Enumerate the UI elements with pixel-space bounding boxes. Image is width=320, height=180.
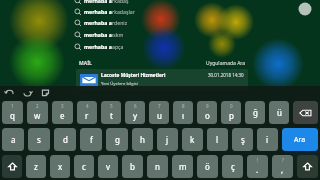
staticText: a [11, 134, 16, 145]
staticText: j [166, 134, 169, 145]
staticText: ş [241, 134, 245, 145]
staticText: 8 [182, 103, 185, 109]
button[interactable]: Uygulamada Ara [206, 60, 246, 67]
button[interactable]: Backspace [293, 101, 318, 124]
staticText: q [10, 110, 15, 121]
button[interactable]: 2 [27, 101, 48, 124]
button[interactable]: ç [222, 155, 243, 178]
button[interactable]: m [172, 155, 193, 178]
staticText: Lacoste Müşteri Hizmetleri [101, 72, 166, 79]
button[interactable]: Shift [297, 155, 318, 178]
staticText: apça [112, 43, 124, 50]
staticText: k [190, 134, 195, 145]
staticText: 4 [86, 103, 89, 109]
button[interactable]: ! [247, 155, 268, 178]
button[interactable]: x [50, 155, 70, 178]
staticText: s [37, 134, 41, 145]
button[interactable]: 6 [125, 101, 145, 124]
button[interactable]: 8 [173, 101, 193, 124]
staticText: merhaba a [84, 8, 112, 15]
staticText: y [133, 110, 138, 121]
button[interactable]: n [147, 155, 168, 178]
staticText: w [34, 110, 41, 121]
button[interactable]: c [74, 155, 94, 178]
staticText: c [82, 161, 86, 172]
staticText: i [266, 134, 269, 145]
staticText: 3 [61, 103, 64, 109]
staticText: v [106, 161, 111, 172]
staticText: . [256, 164, 259, 175]
button[interactable]: 0 [221, 101, 241, 124]
staticText: Ara [294, 135, 306, 145]
button[interactable]: 5 [101, 101, 121, 124]
button[interactable]: Redo [22, 87, 33, 98]
button[interactable]: l [207, 128, 228, 151]
staticText: p [229, 110, 234, 121]
button[interactable]: ğ [245, 101, 265, 124]
button[interactable]: d [54, 128, 76, 151]
staticText: ! [257, 157, 259, 163]
button[interactable]: f [80, 128, 102, 151]
button[interactable]: 7 [149, 101, 169, 124]
button[interactable]: h [132, 128, 153, 151]
button[interactable]: i [257, 128, 278, 151]
staticText: 5 [110, 103, 113, 109]
staticText: rkadaşlar [112, 8, 135, 15]
staticText: Yeni Üyelere bilgisi [101, 81, 138, 87]
button[interactable]: ? [272, 155, 293, 178]
button[interactable]: Stickers [40, 87, 51, 98]
staticText: d [63, 134, 68, 145]
staticText: ü [277, 107, 282, 118]
button[interactable]: Ara [282, 128, 318, 151]
button[interactable]: b [122, 155, 143, 178]
staticText: , [281, 164, 284, 175]
staticText: ı [182, 110, 185, 121]
button[interactable]: j [157, 128, 178, 151]
button[interactable]: ş [232, 128, 253, 151]
button[interactable]: s [28, 128, 50, 151]
button[interactable]: g [106, 128, 128, 151]
button[interactable]: ö [197, 155, 218, 178]
button[interactable]: Lacoste Müşteri Hizmetleri [76, 69, 248, 90]
staticText: ğ [253, 107, 258, 118]
button[interactable]: 1 [2, 101, 23, 124]
staticText: r [85, 110, 89, 121]
button[interactable]: k [182, 128, 203, 151]
staticText: 1 [11, 103, 14, 109]
button[interactable]: merhaba a [74, 17, 320, 28]
staticText: t [110, 110, 113, 121]
button[interactable]: merhaba a [74, 6, 320, 17]
button[interactable]: 9 [197, 101, 217, 124]
staticText: rdeniz [112, 19, 128, 26]
staticText: h [140, 134, 145, 145]
button[interactable]: 4 [77, 101, 97, 124]
button[interactable]: Shift [2, 155, 22, 178]
button[interactable]: 3 [52, 101, 73, 124]
staticText: n [155, 161, 160, 172]
button[interactable]: z [26, 155, 46, 178]
staticText: 30.01.2018 14:30 [208, 72, 244, 78]
staticText: f [90, 134, 93, 145]
staticText: x [58, 161, 63, 172]
button[interactable]: ü [269, 101, 289, 124]
button[interactable]: v [98, 155, 118, 178]
button[interactable]: merhaba a [74, 29, 320, 40]
staticText: 7 [158, 103, 161, 109]
staticText: 6 [134, 103, 137, 109]
staticText: z [34, 161, 38, 172]
staticText: merhaba a [84, 31, 112, 38]
staticText: o [205, 110, 210, 121]
staticText: merhaba a [84, 43, 112, 50]
button[interactable]: merhaba a [74, 41, 320, 52]
staticText: ? [282, 157, 284, 163]
button[interactable]: merhaba a [74, 0, 320, 6]
staticText: 2 [36, 103, 39, 109]
staticText: ö [205, 161, 210, 172]
button[interactable]: a [2, 128, 24, 151]
staticText: Uygulamada Ara [206, 60, 246, 67]
staticText: merhaba a [84, 0, 112, 4]
staticText: ıskm [112, 31, 124, 38]
button[interactable]: Undo [4, 87, 15, 98]
staticText: u [157, 110, 162, 121]
staticText: l [216, 134, 219, 145]
